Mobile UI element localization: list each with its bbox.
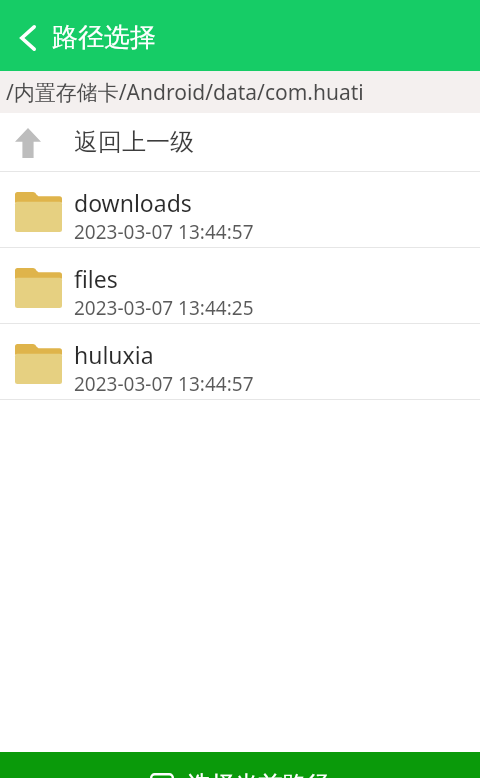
button[interactable]: Back xyxy=(0,0,52,71)
button[interactable]: 选择当前路径 xyxy=(0,752,480,778)
staticText: /内置存储卡/Android/data/com.huati xyxy=(6,78,364,107)
staticText: 2023-03-07 13:44:57 xyxy=(74,219,254,245)
staticText: files xyxy=(74,263,118,294)
staticText: downloads xyxy=(74,187,192,218)
button[interactable]: huluxia xyxy=(0,324,480,399)
staticText: 路径选择 xyxy=(52,21,156,54)
staticText: 返回上一级 xyxy=(74,127,194,157)
staticText: 2023-03-07 13:44:57 xyxy=(74,371,254,397)
staticText: 2023-03-07 13:44:25 xyxy=(74,295,254,321)
button[interactable]: 返回上一级 xyxy=(0,113,480,171)
staticText: huluxia xyxy=(74,339,154,370)
button[interactable]: downloads xyxy=(0,172,480,247)
button[interactable]: files xyxy=(0,248,480,323)
staticText: 选择当前路径 xyxy=(174,767,331,778)
